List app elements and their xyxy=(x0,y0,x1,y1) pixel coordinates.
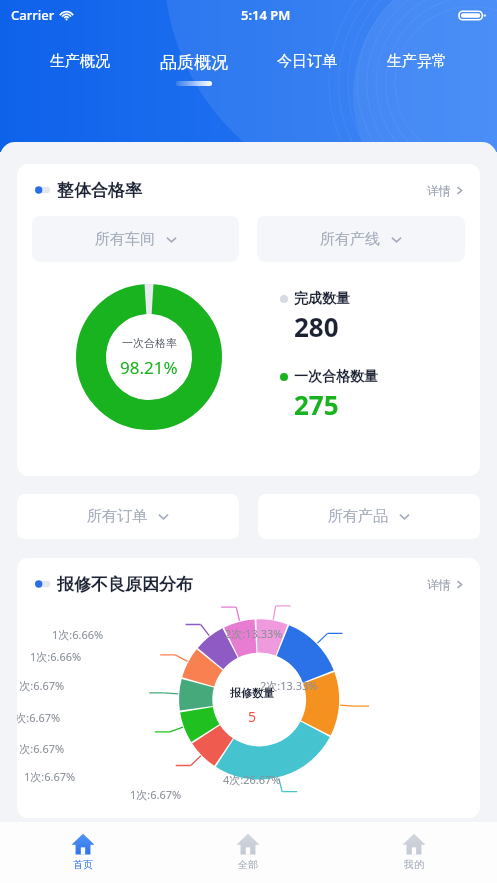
button[interactable]: 详情 xyxy=(427,183,464,198)
other: 首页 xyxy=(71,832,95,856)
button[interactable]: 品质概况 xyxy=(155,50,233,88)
staticText: 报修数量 xyxy=(230,686,274,700)
button[interactable]: 生产概况 xyxy=(45,50,115,86)
staticText: 报修不良原因分布 xyxy=(57,574,193,595)
staticText: 1次:6.67% xyxy=(17,678,65,693)
staticText: 1次:6.66% xyxy=(52,627,104,642)
staticText: 我的 xyxy=(404,858,424,871)
staticText: 1次:6.67% xyxy=(24,769,76,784)
button[interactable]: 生产异常 xyxy=(382,50,452,86)
button[interactable]: 我的 xyxy=(331,822,497,883)
button[interactable]: 首页 xyxy=(0,822,165,883)
staticText: 全部 xyxy=(238,858,258,871)
staticText: 品质概况 xyxy=(160,52,228,73)
button[interactable]: 今日订单 xyxy=(272,50,342,86)
staticText: 所有订单 xyxy=(87,507,147,526)
other: 我的 xyxy=(402,832,426,856)
staticText: 一次合格数量 xyxy=(294,368,378,386)
button[interactable]: 所有车间 xyxy=(32,216,239,262)
staticText: 5:14 PM xyxy=(241,6,291,24)
button[interactable]: 报修不良原因分布 xyxy=(17,558,480,610)
staticText: 生产概况 xyxy=(50,52,110,71)
button[interactable]: 所有产品 xyxy=(258,494,480,539)
other: 全部 xyxy=(236,832,260,856)
staticText: 275 xyxy=(294,387,339,422)
staticText: 今日订单 xyxy=(277,52,337,71)
button[interactable]: 详情 xyxy=(427,577,464,592)
staticText: 98.21% xyxy=(120,356,178,379)
staticText: 所有车间 xyxy=(95,230,155,249)
staticText: 1次:6.67% xyxy=(130,787,182,802)
staticText: 所有产线 xyxy=(320,230,380,249)
staticText: 280 xyxy=(294,309,339,344)
staticText: 1次:6.66% xyxy=(30,649,82,664)
button[interactable]: 整体合格率 xyxy=(17,164,480,216)
staticText: 详情 xyxy=(427,577,451,592)
staticText: 2次:13.33% xyxy=(225,626,283,641)
button[interactable]: 所有产线 xyxy=(257,216,465,262)
button[interactable]: 全部 xyxy=(165,822,331,883)
staticText: 4次:26.67% xyxy=(223,772,281,787)
staticText: 1次:6.67% xyxy=(17,710,61,725)
staticText: 整体合格率 xyxy=(57,180,142,201)
staticText: 详情 xyxy=(427,183,451,198)
staticText: 1次:6.67% xyxy=(17,741,65,756)
staticText: 完成数量 xyxy=(294,290,350,308)
staticText: Carrier xyxy=(11,6,55,24)
staticText: 一次合格率 xyxy=(122,336,177,350)
button[interactable]: 所有订单 xyxy=(17,494,239,539)
staticText: 首页 xyxy=(73,858,93,871)
staticText: 生产异常 xyxy=(387,52,447,71)
staticText: 5 xyxy=(248,707,257,726)
staticText: 2次:13.33% xyxy=(260,678,318,693)
staticText: 所有产品 xyxy=(328,507,388,526)
